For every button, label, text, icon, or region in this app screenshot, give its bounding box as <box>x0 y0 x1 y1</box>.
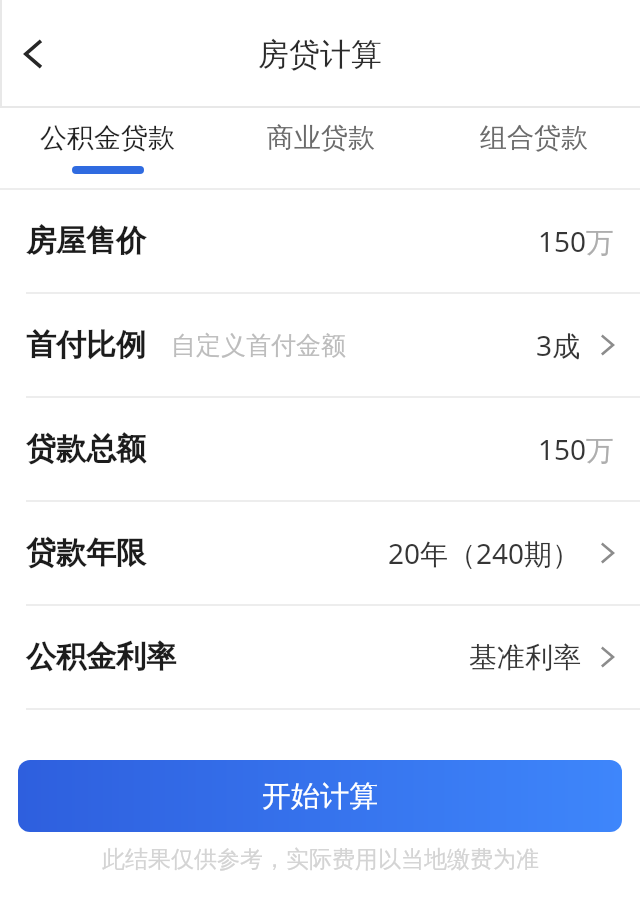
staticText: 150万 <box>538 430 615 468</box>
staticText: 公积金利率 <box>26 638 176 676</box>
button[interactable]: 贷款年限 <box>0 502 640 604</box>
staticText: 组合贷款 <box>480 121 588 155</box>
staticText: 开始计算 <box>262 778 378 815</box>
staticText: 20年（240期） <box>388 534 581 572</box>
staticText: 自定义首付金额 <box>171 330 346 361</box>
button[interactable]: 开始计算 <box>18 760 622 832</box>
button[interactable]: 组合贷款 <box>427 108 640 190</box>
button[interactable]: 公积金贷款 <box>0 108 214 190</box>
button[interactable]: 公积金利率 <box>0 606 640 708</box>
staticText: 房屋售价 <box>26 222 146 260</box>
staticText: 贷款总额 <box>26 430 146 468</box>
staticText: 此结果仅供参考，实际费用以当地缴费为准 <box>102 845 539 874</box>
button[interactable]: 贷款总额 <box>0 398 640 500</box>
button[interactable]: 首付比例 <box>0 294 640 396</box>
button[interactable]: Back <box>5 26 61 82</box>
staticText: 首付比例 <box>26 326 146 364</box>
button[interactable]: 商业贷款 <box>214 108 427 190</box>
staticText: 基准利率 <box>469 640 581 675</box>
staticText: 3成 <box>536 326 581 364</box>
button[interactable]: 房屋售价 <box>0 190 640 292</box>
staticText: 150万 <box>538 222 615 260</box>
staticText: 房贷计算 <box>258 35 382 74</box>
staticText: 商业贷款 <box>267 121 375 155</box>
staticText: 公积金贷款 <box>40 121 175 155</box>
staticText: 贷款年限 <box>26 534 146 572</box>
